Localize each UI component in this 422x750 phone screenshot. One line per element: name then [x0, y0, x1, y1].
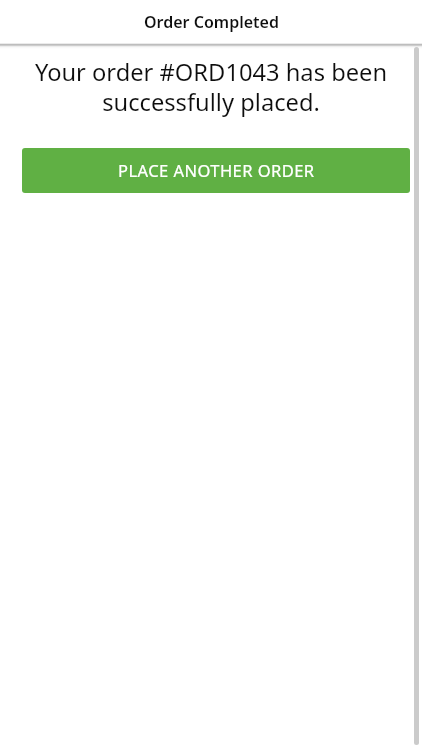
staticText: Your order #ORD1043 has been successfull… — [20, 56, 402, 118]
staticText: Order Completed — [144, 11, 279, 33]
button[interactable]: PLACE ANOTHER ORDER — [22, 148, 410, 193]
staticText: PLACE ANOTHER ORDER — [118, 159, 315, 181]
